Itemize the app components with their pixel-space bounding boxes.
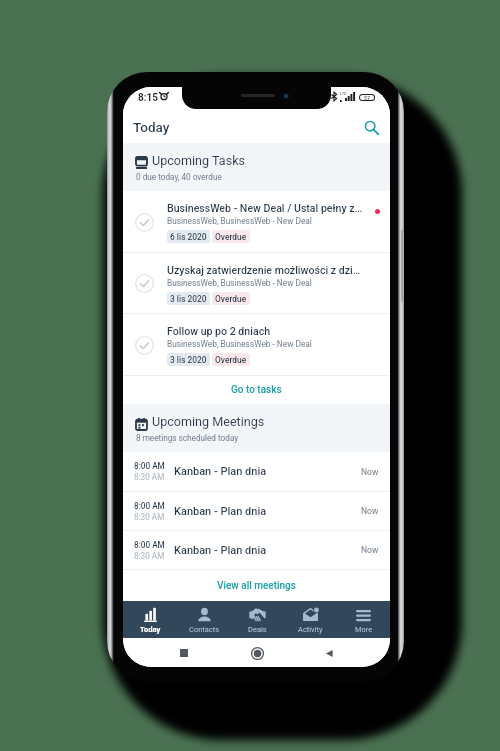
button[interactable]: Search bbox=[358, 114, 384, 140]
button[interactable]: Recents bbox=[172, 641, 196, 665]
button[interactable]: Deals bbox=[231, 601, 284, 638]
button[interactable]: Activity bbox=[284, 601, 337, 638]
staticText: 57 bbox=[364, 95, 370, 100]
staticText: 0 due today, 40 overdue bbox=[136, 172, 222, 182]
staticText: Upcoming Meetings bbox=[152, 414, 265, 429]
staticText: Kanban - Plan dnia bbox=[174, 544, 267, 557]
staticText: Now bbox=[361, 467, 379, 477]
staticText: Kanban - Plan dnia bbox=[174, 465, 267, 478]
button[interactable]: 8:00 AM bbox=[123, 531, 390, 569]
staticText: 6 lis 2020 bbox=[170, 232, 207, 242]
staticText: 8:30 AM bbox=[134, 472, 165, 482]
button[interactable]: Go to tasks bbox=[123, 376, 390, 404]
staticText: Overdue bbox=[215, 355, 247, 365]
staticText: 3 lis 2020 bbox=[170, 294, 207, 304]
button[interactable]: Contacts bbox=[177, 601, 231, 638]
button[interactable]: Follow up po 2 dniach bbox=[123, 314, 390, 375]
staticText: Contacts bbox=[189, 625, 220, 634]
staticText: Kanban - Plan dnia bbox=[174, 505, 267, 518]
staticText: Uzyskaj zatwierdzenie możliwości z dzi… bbox=[167, 264, 361, 276]
staticText: 8:15 bbox=[138, 92, 159, 104]
staticText: 8:00 AM bbox=[134, 501, 165, 511]
button[interactable]: Today bbox=[123, 601, 177, 638]
button[interactable]: BusinessWeb - New Deal / Ustal pełny z… bbox=[123, 191, 390, 252]
staticText: LTE bbox=[340, 91, 347, 96]
staticText: Deals bbox=[248, 625, 267, 634]
staticText: 3 lis 2020 bbox=[170, 355, 207, 365]
staticText: Now bbox=[361, 545, 379, 555]
staticText: 8:30 AM bbox=[134, 551, 165, 561]
staticText: BusinessWeb, BusinessWeb - New Deal bbox=[167, 339, 312, 349]
staticText: BusinessWeb, BusinessWeb - New Deal bbox=[167, 216, 312, 226]
staticText: Today bbox=[133, 119, 170, 135]
staticText: Today bbox=[140, 625, 161, 634]
staticText: Overdue bbox=[215, 294, 247, 304]
button[interactable]: Upcoming Meetings bbox=[123, 404, 390, 452]
staticText: Now bbox=[361, 506, 379, 516]
staticText: BusinessWeb, BusinessWeb - New Deal bbox=[167, 278, 312, 288]
staticText: Overdue bbox=[215, 232, 247, 242]
button[interactable]: Back bbox=[317, 641, 341, 665]
button[interactable]: Uzyskaj zatwierdzenie możliwości z dzi… bbox=[123, 253, 390, 313]
staticText: 8:00 AM bbox=[134, 461, 165, 471]
button[interactable]: View all meetings bbox=[123, 570, 390, 601]
staticText: More bbox=[355, 625, 373, 634]
button[interactable]: 8:00 AM bbox=[123, 492, 390, 530]
button[interactable]: Home bbox=[245, 641, 269, 665]
staticText: Activity bbox=[298, 625, 323, 634]
button[interactable]: Upcoming Tasks bbox=[123, 143, 390, 191]
button[interactable]: 8:00 AM bbox=[123, 452, 390, 491]
staticText: Go to tasks bbox=[231, 384, 282, 396]
staticText: Upcoming Tasks bbox=[152, 153, 246, 168]
staticText: BusinessWeb - New Deal / Ustal pełny z… bbox=[167, 202, 363, 214]
staticText: Follow up po 2 dniach bbox=[167, 325, 271, 337]
button[interactable]: More bbox=[337, 601, 390, 638]
staticText: 8:00 AM bbox=[134, 540, 165, 550]
staticText: View all meetings bbox=[217, 580, 296, 592]
staticText: 8 meetings scheduled today bbox=[136, 433, 239, 443]
staticText: 8:30 AM bbox=[134, 512, 165, 522]
